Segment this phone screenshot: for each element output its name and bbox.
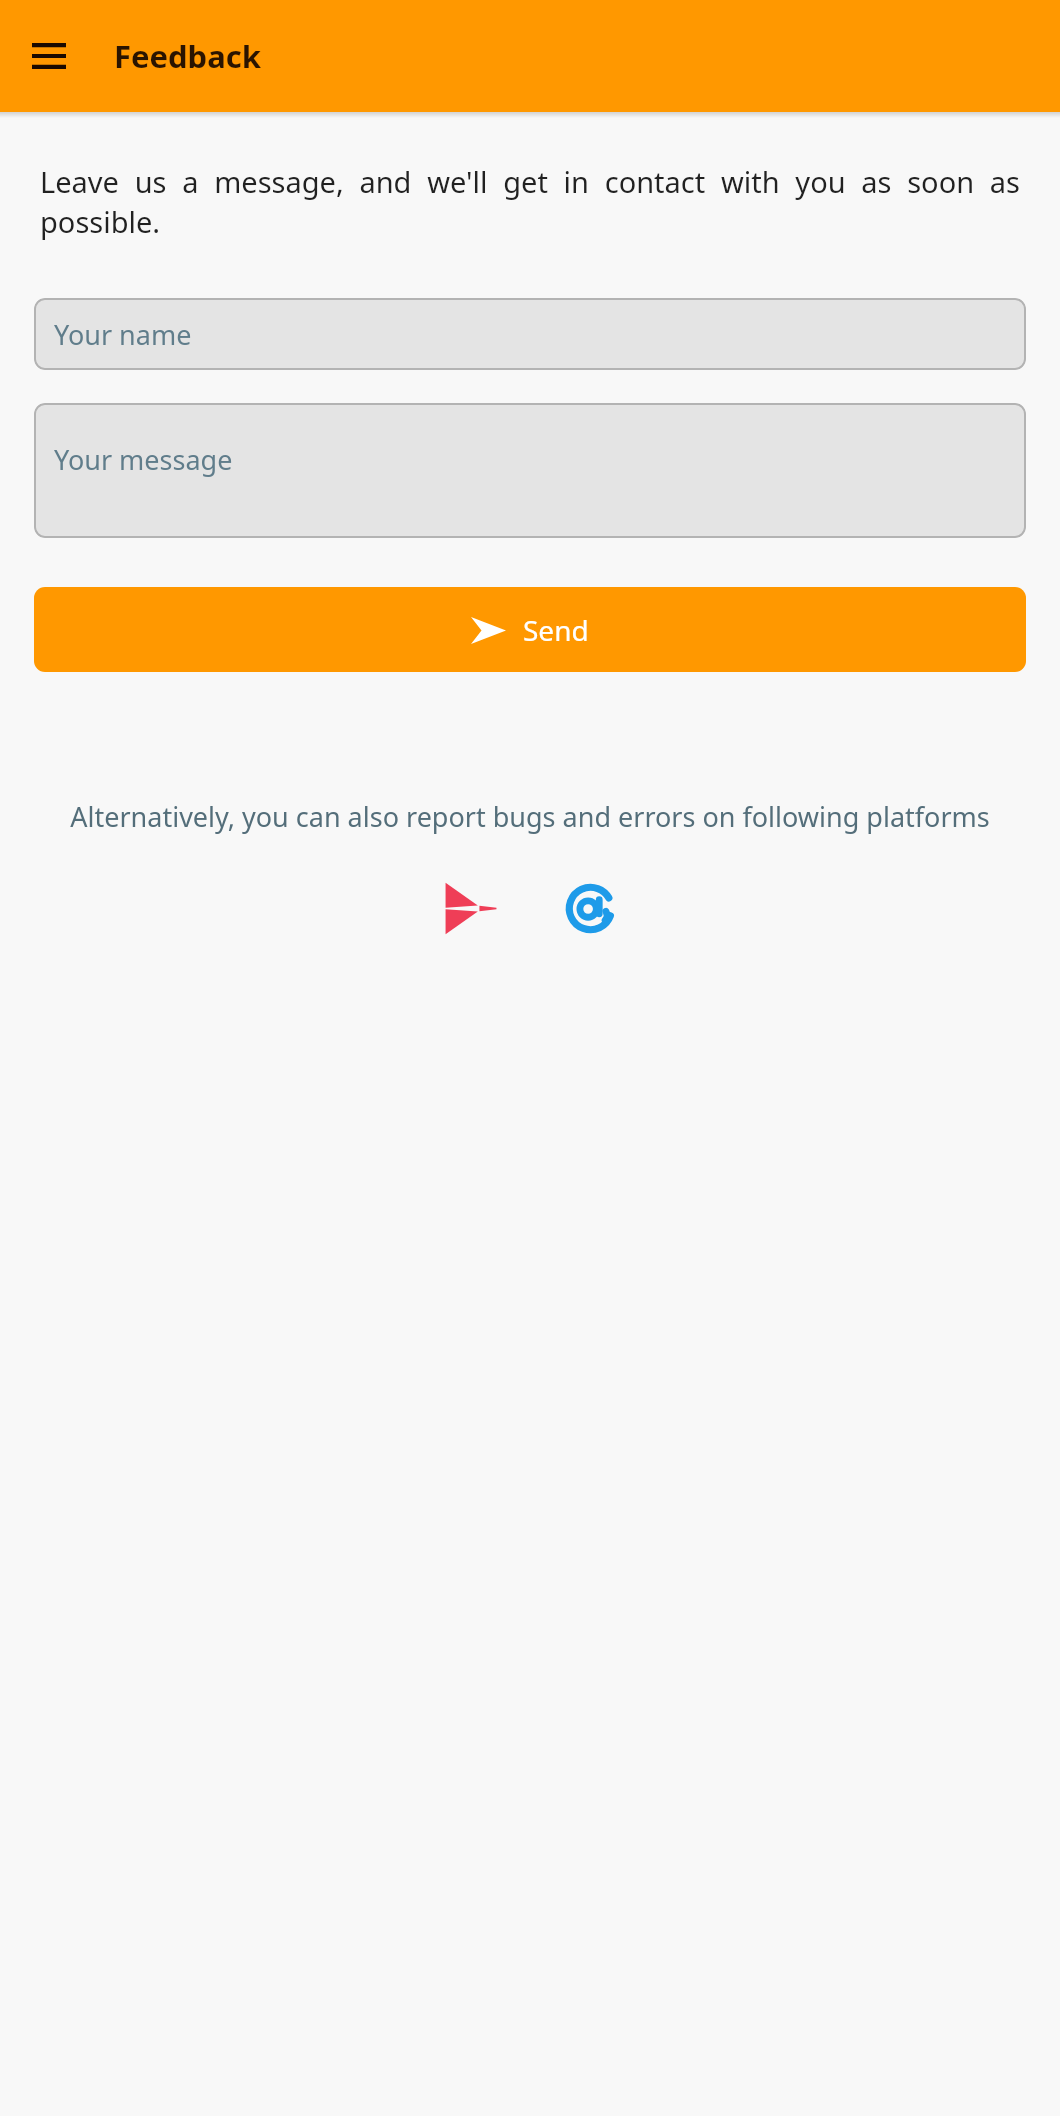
staticText: Your message xyxy=(54,441,233,478)
staticText: Feedback xyxy=(114,35,262,77)
button[interactable]: Send email xyxy=(553,871,627,945)
staticText: Your name xyxy=(54,316,192,353)
button[interactable]: Your message xyxy=(34,403,1026,538)
staticText: Leave us a message, and we'll get in con… xyxy=(40,162,1020,242)
button[interactable]: Your name xyxy=(34,298,1026,370)
button[interactable]: Open navigation menu xyxy=(22,29,76,83)
button[interactable]: Send xyxy=(34,587,1026,672)
button[interactable]: Open Google Play store page xyxy=(433,871,507,945)
staticText: Send xyxy=(523,611,589,649)
staticText: Alternatively, you can also report bugs … xyxy=(54,798,1006,835)
